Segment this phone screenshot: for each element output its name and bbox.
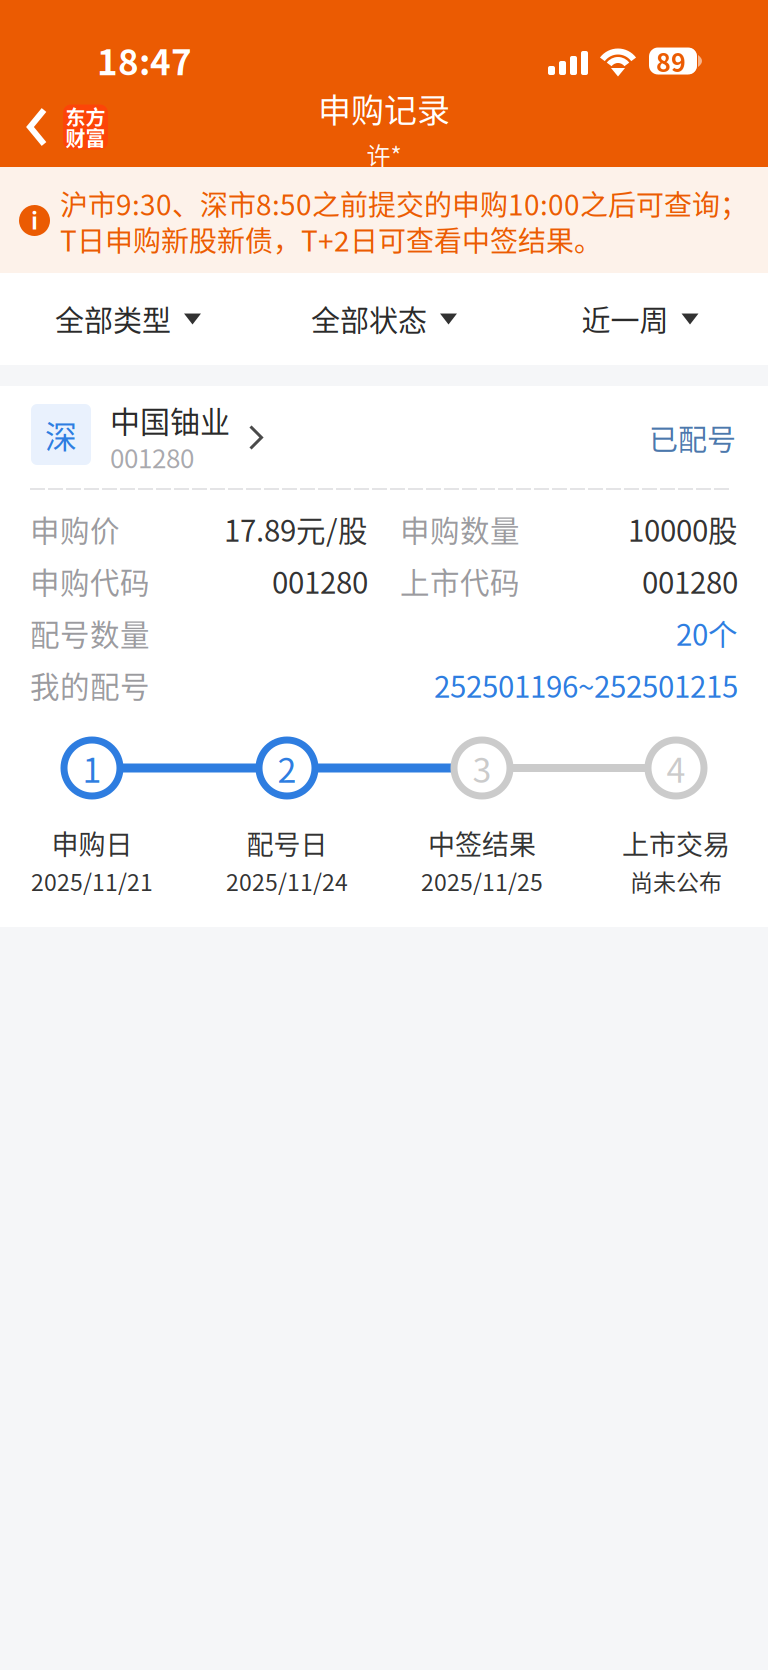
- button[interactable]: 近一周: [512, 273, 768, 365]
- staticText: 2025/11/21: [31, 864, 153, 898]
- staticText: 4: [666, 743, 685, 793]
- staticText: 全部类型: [55, 298, 171, 340]
- staticText: 17.89元/股: [224, 508, 368, 550]
- staticText: 申购代码: [30, 560, 150, 602]
- staticText: 申购数量: [400, 508, 520, 550]
- staticText: 2: [277, 743, 296, 793]
- staticText: 中国铀业: [110, 398, 230, 441]
- staticText: 全部状态: [311, 298, 427, 340]
- staticText: 001280: [110, 438, 194, 476]
- staticText: 申购日: [51, 823, 132, 863]
- staticText: 001280: [642, 560, 738, 602]
- staticText: 财富: [65, 123, 105, 152]
- staticText: 1: [82, 743, 101, 793]
- staticText: 配号数量: [30, 612, 150, 654]
- staticText: 2025/11/24: [226, 864, 348, 898]
- button[interactable]: 全部类型: [0, 273, 256, 365]
- staticText: 许*: [366, 137, 401, 172]
- staticText: 尚未公布: [630, 864, 722, 898]
- staticText: 001280: [272, 560, 368, 602]
- staticText: 18:47: [97, 35, 192, 85]
- button[interactable]: 深: [0, 386, 768, 486]
- staticText: 申购价: [30, 508, 120, 550]
- staticText: 东方: [65, 102, 105, 131]
- staticText: 已配号: [649, 417, 736, 459]
- staticText: 252501196~252501215: [434, 664, 738, 706]
- staticText: 3: [472, 743, 491, 793]
- button[interactable]: Back: [0, 80, 122, 158]
- staticText: 10000股: [628, 508, 738, 550]
- staticText: 89: [656, 43, 686, 79]
- staticText: 2025/11/25: [421, 864, 543, 898]
- staticText: 近一周: [581, 298, 668, 340]
- staticText: 20个: [676, 612, 738, 654]
- staticText: 中签结果: [428, 823, 536, 863]
- staticText: i: [31, 203, 38, 236]
- staticText: 上市代码: [400, 560, 520, 602]
- staticText: 配号日: [246, 823, 327, 863]
- staticText: 沪市9:30、深市8:50之前提交的申购10:00之后可查询；: [60, 183, 748, 223]
- staticText: 我的配号: [30, 664, 150, 706]
- button[interactable]: 全部状态: [256, 273, 512, 365]
- staticText: 深: [45, 411, 77, 458]
- staticText: 申购记录: [318, 84, 450, 132]
- staticText: T日申购新股新债，T+2日可查看中签结果。: [60, 219, 602, 259]
- staticText: 上市交易: [622, 823, 730, 863]
